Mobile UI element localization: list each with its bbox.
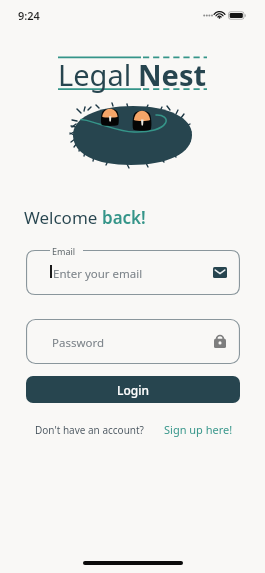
button[interactable]: Password (26, 319, 240, 364)
button[interactable]: Sign up here! (164, 422, 233, 437)
staticText: Email (52, 245, 76, 257)
staticText: 9:24 (18, 8, 40, 23)
staticText: Nest (138, 55, 207, 94)
staticText: back! (102, 206, 146, 229)
staticText: Sign up here! (164, 422, 233, 437)
other: Show password (214, 333, 226, 348)
staticText: Password (52, 335, 105, 351)
button[interactable]: Email (26, 250, 240, 295)
staticText: Legal (58, 55, 132, 94)
staticText: Don't have an account? (35, 423, 144, 437)
button[interactable]: Login (26, 376, 240, 403)
other: Email (213, 267, 227, 278)
staticText: Welcome (24, 206, 102, 229)
staticText: Login (117, 382, 149, 398)
staticText: Enter your email (53, 266, 143, 282)
